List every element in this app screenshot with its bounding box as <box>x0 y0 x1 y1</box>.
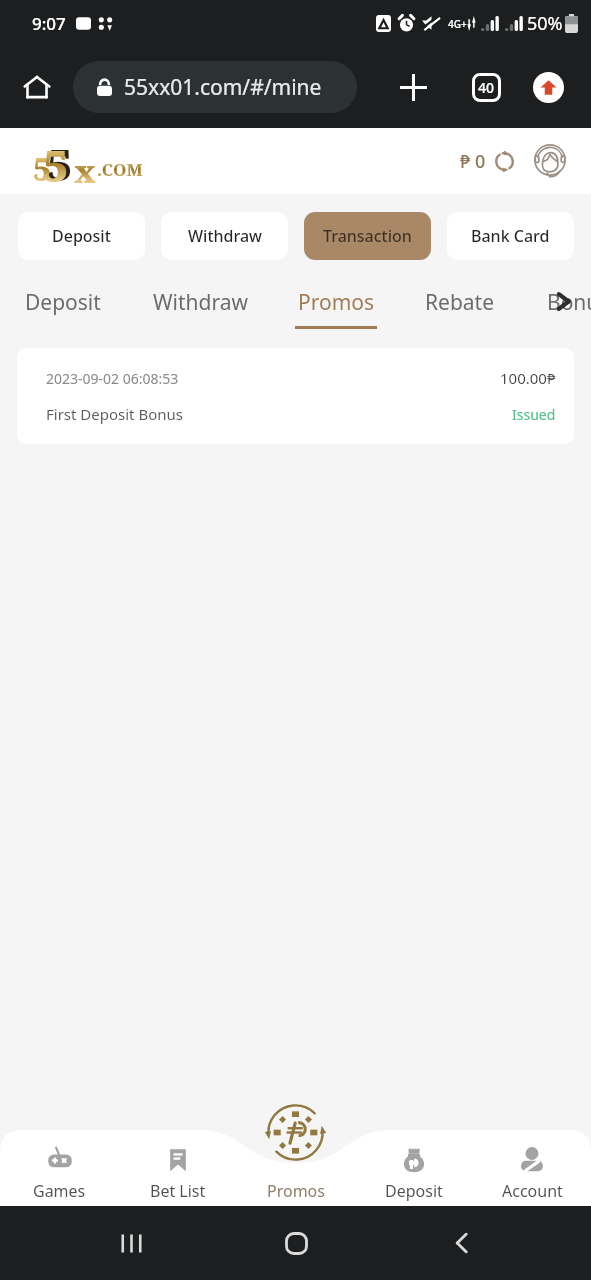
staticText: 40 <box>478 78 495 97</box>
button[interactable]: Recents <box>48 1206 214 1280</box>
button[interactable]: Back <box>379 1206 544 1280</box>
button[interactable]: Games <box>0 1130 119 1206</box>
button[interactable]: Promos <box>274 272 398 336</box>
staticText: Promos <box>267 1180 325 1202</box>
button[interactable]: Bet List <box>119 1130 237 1206</box>
button[interactable]: Deposit <box>18 212 145 260</box>
staticText: 5 <box>33 147 52 191</box>
staticText: 100.00₱ <box>500 368 556 388</box>
staticText: 55xx01.com/#/mine <box>124 73 322 102</box>
staticText: .COM <box>97 158 143 181</box>
button[interactable]: Withdraw <box>161 212 288 260</box>
button[interactable]: Deposit <box>355 1130 473 1206</box>
staticText: Bank Card <box>471 225 550 247</box>
staticText: Issued <box>512 405 556 424</box>
staticText: First Deposit Bonus <box>46 404 183 424</box>
staticText: Bonus <box>547 288 591 317</box>
button[interactable]: Promos <box>264 1101 326 1163</box>
staticText: Deposit <box>25 288 101 317</box>
staticText: Account <box>502 1180 563 1202</box>
button[interactable]: Bank Card <box>447 212 574 260</box>
staticText: 5 <box>47 134 73 190</box>
staticText: 9:07 <box>32 12 66 35</box>
staticText: 5 <box>43 135 69 191</box>
button[interactable]: Home <box>14 64 60 110</box>
staticText: Withdraw <box>153 288 248 317</box>
button[interactable]: Deposit <box>0 272 126 336</box>
staticText: x <box>74 150 96 192</box>
button[interactable]: Downloads <box>533 72 564 103</box>
button[interactable]: 55xx01.com/#/mine <box>73 61 357 113</box>
button[interactable]: 2023-09-02 06:08:53 <box>17 348 574 444</box>
button[interactable]: Promos <box>237 1130 355 1206</box>
button[interactable]: Account <box>473 1130 591 1206</box>
staticText: Rebate <box>425 288 495 317</box>
staticText: Games <box>33 1180 86 1202</box>
staticText: Promos <box>298 288 375 317</box>
staticText: 2023-09-02 06:08:53 <box>46 369 179 388</box>
button[interactable]: Rebate <box>398 272 522 336</box>
button[interactable]: New tab <box>393 67 433 107</box>
staticText: 4G+ <box>448 17 467 31</box>
button[interactable]: Withdraw <box>126 272 274 336</box>
staticText: Bet List <box>150 1180 206 1202</box>
button[interactable]: ₱ 0 <box>460 149 515 174</box>
button[interactable]: Home <box>214 1206 379 1280</box>
staticText: Withdraw <box>188 225 262 247</box>
button[interactable]: Transaction <box>304 212 431 260</box>
staticText: 50% <box>527 11 563 36</box>
staticText: Deposit <box>385 1180 443 1202</box>
button[interactable]: Tabs <box>469 70 503 104</box>
staticText: Transaction <box>323 225 412 247</box>
button[interactable]: Customer service <box>531 142 569 180</box>
staticText: ₱ 0 <box>460 149 486 174</box>
staticText: Deposit <box>52 225 111 247</box>
